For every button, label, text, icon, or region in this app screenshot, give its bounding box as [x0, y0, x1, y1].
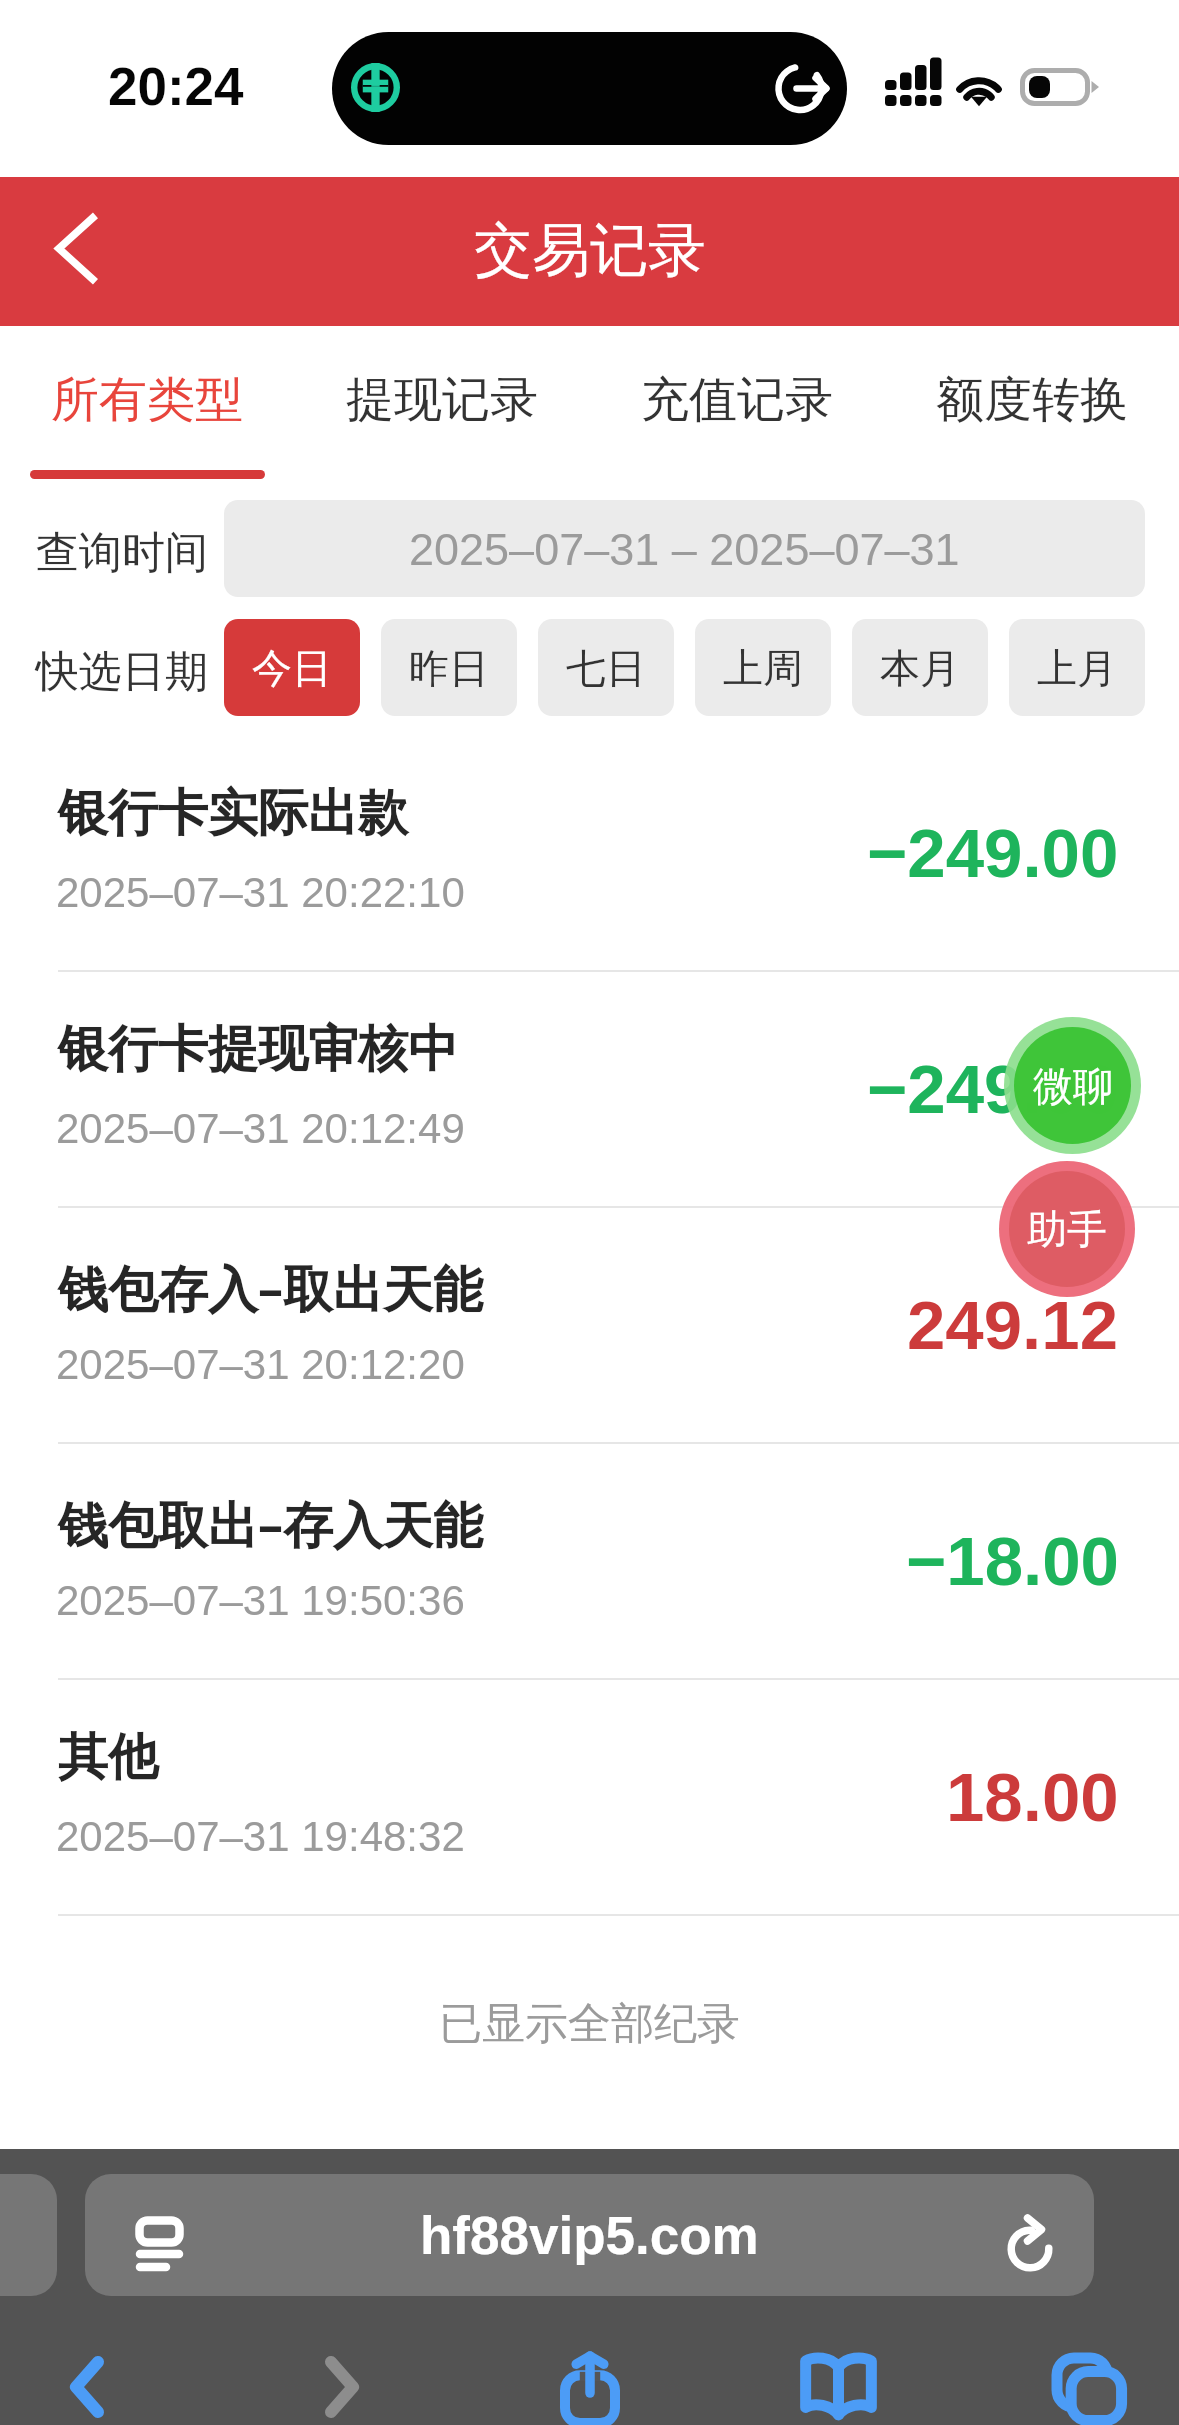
staticText: 2025–07–31 20:22:10 — [56, 869, 465, 916]
staticText: 上周 — [723, 643, 803, 693]
button[interactable]: 昨日 — [381, 619, 517, 716]
button[interactable]: 本月 — [852, 619, 988, 716]
staticText: 钱包存入–取出天能 — [58, 1254, 483, 1322]
button[interactable]: 充值记录 — [589, 326, 884, 500]
staticText: 2025–07–31 20:12:20 — [56, 1341, 465, 1388]
staticText: 2025–07–31 19:50:36 — [56, 1577, 465, 1624]
staticText: 其他 — [58, 1726, 158, 1789]
staticText: 快选日期 — [36, 645, 208, 699]
staticText: 2025–07–31 19:48:32 — [56, 1813, 465, 1860]
staticText: 查询时间 — [36, 526, 208, 580]
staticText: hf88vip5.com — [420, 2206, 759, 2265]
staticText: 249.12 — [907, 1287, 1119, 1364]
button[interactable]: Back — [16, 198, 136, 306]
staticText: 提现记录 — [346, 370, 538, 430]
staticText: 18.00 — [946, 1759, 1119, 1836]
button[interactable]: 2025–07–31 – 2025–07–31 — [224, 500, 1145, 597]
button[interactable]: 上月 — [1009, 619, 1145, 716]
button[interactable]: 银行卡实际出款 — [0, 736, 1179, 972]
button[interactable]: 银行卡提现审核中 — [0, 972, 1179, 1208]
button[interactable]: 钱包存入–取出天能 — [0, 1208, 1179, 1444]
button[interactable]: Bookmarks — [778, 2327, 898, 2425]
staticText: 上月 — [1037, 643, 1117, 693]
staticText: 今日 — [252, 643, 332, 693]
staticText: 微聊 — [1033, 1061, 1113, 1111]
staticText: 2025–07–31 20:12:49 — [56, 1105, 465, 1152]
staticText: 本月 — [880, 643, 960, 693]
staticText: −249.00 — [867, 815, 1119, 892]
button[interactable]: Share — [530, 2327, 650, 2425]
staticText: 昨日 — [409, 643, 489, 693]
button[interactable]: 所有类型 — [0, 326, 294, 500]
staticText: 助手 — [1027, 1204, 1107, 1254]
staticText: 钱包取出–存入天能 — [58, 1490, 483, 1558]
staticText: −249.00 — [867, 1051, 1119, 1128]
staticText: 已显示全部纪录 — [439, 1997, 740, 2051]
staticText: 2025–07–31 – 2025–07–31 — [409, 524, 960, 574]
button[interactable]: Forward — [282, 2327, 402, 2425]
button[interactable]: 七日 — [538, 619, 674, 716]
button[interactable]: Page settings — [119, 2204, 209, 2294]
staticText: 所有类型 — [51, 370, 243, 430]
button[interactable]: Back — [27, 2327, 147, 2425]
staticText: 银行卡实际出款 — [58, 782, 408, 845]
button[interactable]: 提现记录 — [294, 326, 589, 500]
staticText: 交易记录 — [474, 214, 706, 287]
staticText: 银行卡提现审核中 — [58, 1018, 458, 1081]
button[interactable]: 额度转换 — [884, 326, 1179, 500]
button[interactable]: 助手 — [999, 1161, 1135, 1297]
button[interactable]: 上周 — [695, 619, 831, 716]
button[interactable]: 钱包取出–存入天能 — [0, 1444, 1179, 1680]
button[interactable]: 今日 — [224, 619, 360, 716]
button[interactable]: Tabs — [1027, 2327, 1147, 2425]
button[interactable]: 其他 — [0, 1680, 1179, 1916]
staticText: −18.00 — [906, 1523, 1119, 1600]
button[interactable]: 微聊 — [1004, 1017, 1141, 1154]
staticText: 七日 — [566, 643, 646, 693]
staticText: 额度转换 — [936, 370, 1128, 430]
button[interactable]: hf88vip5.com — [85, 2174, 1094, 2296]
staticText: 充值记录 — [641, 370, 833, 430]
staticText: 20:24 — [108, 57, 244, 116]
button[interactable]: Reload — [980, 2197, 1080, 2296]
